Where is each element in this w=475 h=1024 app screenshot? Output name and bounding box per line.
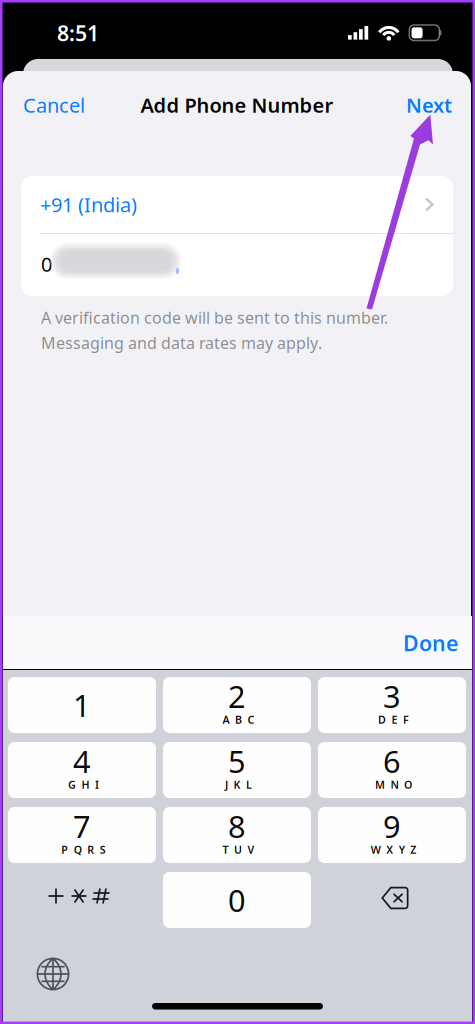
staticText: Done xyxy=(403,629,458,657)
button[interactable]: Next xyxy=(396,87,452,123)
staticText: ABC xyxy=(222,712,254,727)
staticText: TUV xyxy=(222,842,254,857)
staticText: DEF xyxy=(378,712,409,727)
staticText: Add Phone Number xyxy=(140,92,333,118)
button[interactable]: 4 xyxy=(8,742,156,798)
staticText: 5 xyxy=(228,741,246,781)
button[interactable]: Done xyxy=(388,623,458,663)
button[interactable]: +91 (India) xyxy=(21,176,453,233)
button[interactable]: 0 xyxy=(163,872,311,928)
button[interactable]: Next keyboard xyxy=(28,951,78,997)
staticText: 1 xyxy=(73,685,91,725)
staticText: 9 xyxy=(383,806,401,846)
staticText: 7 xyxy=(73,806,91,846)
staticText: 4 xyxy=(73,741,91,781)
button[interactable]: 2 xyxy=(163,677,311,733)
staticText: MNO xyxy=(375,777,412,792)
staticText: 8 xyxy=(228,806,246,846)
button[interactable]: 1 xyxy=(8,677,156,733)
staticText: 0 xyxy=(228,880,246,920)
staticText: JKL xyxy=(225,777,252,792)
button[interactable]: 9 xyxy=(318,807,466,863)
staticText: 2 xyxy=(228,676,246,716)
staticText: GHI xyxy=(68,777,99,792)
staticText: 6 xyxy=(383,741,401,781)
button[interactable]: 7 xyxy=(8,807,156,863)
button[interactable]: Cancel xyxy=(23,87,99,123)
staticText: PQRS xyxy=(61,842,106,857)
staticText: Next xyxy=(406,92,452,118)
button[interactable]: Plus, star, hash xyxy=(8,872,156,928)
staticText: Messaging and data rates may apply. xyxy=(41,332,322,353)
staticText: 0 xyxy=(41,251,52,277)
staticText: A verification code will be sent to this… xyxy=(41,307,388,328)
button[interactable]: 8 xyxy=(163,807,311,863)
button[interactable]: Delete xyxy=(318,872,466,928)
staticText: Cancel xyxy=(23,92,85,118)
staticText: WXYZ xyxy=(371,842,416,857)
staticText: 3 xyxy=(383,676,401,716)
button[interactable]: 6 xyxy=(318,742,466,798)
staticText: +91 (India) xyxy=(40,191,137,218)
button[interactable]: 5 xyxy=(163,742,311,798)
staticText: 8:51 xyxy=(57,19,99,47)
button[interactable]: 3 xyxy=(318,677,466,733)
